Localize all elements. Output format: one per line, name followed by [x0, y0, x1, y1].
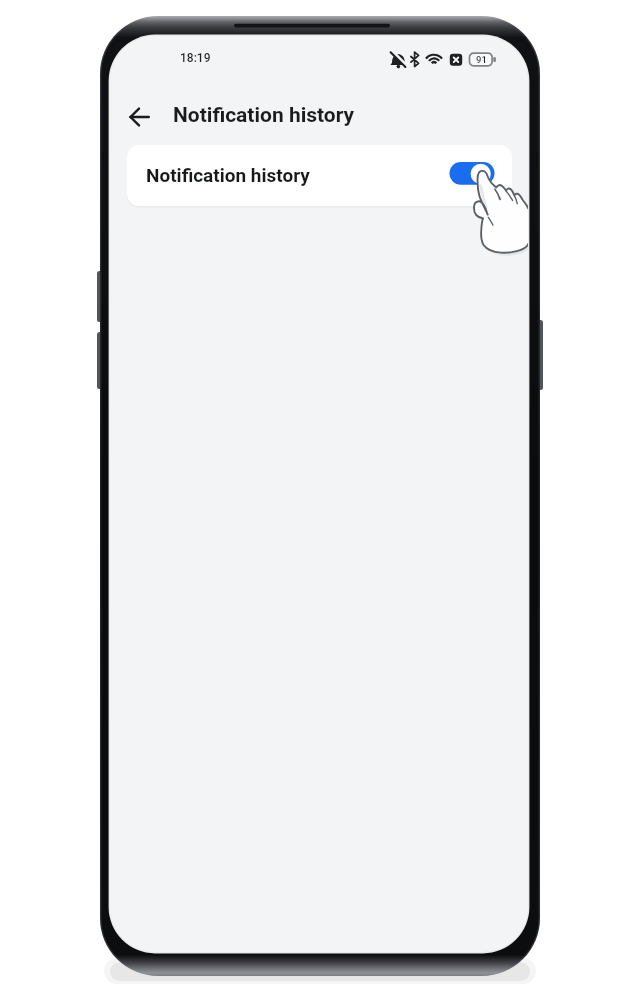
staticText: 18:19 — [180, 51, 211, 65]
button[interactable] — [120, 99, 160, 135]
button[interactable]: Notification history — [127, 145, 512, 206]
button[interactable] — [449, 161, 495, 185]
button[interactable]: Notification history — [156, 100, 386, 134]
staticText: Notification history — [146, 164, 310, 186]
staticText: Notification history — [173, 103, 355, 128]
staticText: 91 — [476, 54, 487, 65]
